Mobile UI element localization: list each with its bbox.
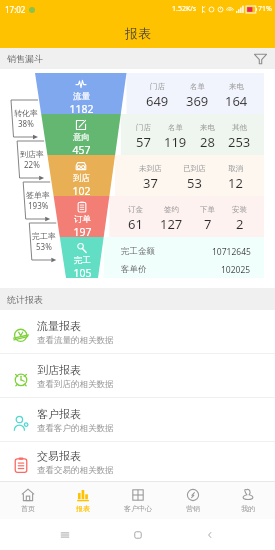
staticText: 164 [225, 92, 248, 110]
staticText: 销售漏斗 [7, 53, 43, 64]
staticText: 订金 [128, 205, 143, 214]
staticText: 签单率 [26, 190, 50, 200]
button[interactable]: Menu [58, 528, 72, 542]
staticText: 253 [228, 133, 251, 151]
staticText: 统计报表 [7, 294, 43, 305]
staticText: 下单 [200, 205, 215, 214]
staticText: 报表 [76, 504, 90, 513]
staticText: 457 [72, 143, 91, 157]
button[interactable]: 客户中心 [110, 481, 165, 519]
staticText: 名单 [168, 123, 183, 132]
staticText: 53% [36, 241, 52, 252]
staticText: 10712645 [212, 246, 251, 258]
staticText: 客户中心 [124, 504, 152, 513]
staticText: 193% [28, 200, 49, 211]
button[interactable]: Back [203, 528, 217, 542]
staticText: 查看到店的相关数据 [37, 379, 114, 390]
button[interactable]: 客户报表 [0, 398, 275, 442]
staticText: 查看交易的相关数据 [37, 465, 114, 476]
staticText: 102025 [221, 264, 251, 276]
staticText: 查看客户的相关数据 [37, 423, 114, 434]
button[interactable]: 流量报表 [0, 310, 275, 354]
staticText: 61 [128, 215, 143, 233]
staticText: 到店率 [20, 149, 44, 159]
staticText: 7 [204, 215, 212, 233]
staticText: 门店 [136, 123, 151, 132]
staticText: 其他 [232, 123, 247, 132]
staticText: 签约 [164, 205, 179, 214]
staticText: 28 [200, 133, 215, 151]
staticText: 我的 [241, 504, 255, 513]
staticText: 53 [187, 174, 202, 192]
staticText: 1182 [69, 102, 94, 116]
staticText: 102 [72, 184, 91, 198]
staticText: 369 [186, 92, 209, 110]
button[interactable]: 首页 [0, 481, 55, 519]
staticText: 来电 [229, 82, 244, 91]
staticText: 客户报表 [37, 407, 81, 421]
staticText: 首页 [21, 504, 35, 513]
staticText: 客单价 [121, 264, 147, 275]
staticText: 营销 [186, 504, 200, 513]
staticText: 到店 [73, 173, 90, 184]
staticText: 22% [24, 159, 40, 170]
button[interactable]: 到店报表 [0, 354, 275, 398]
staticText: 流量报表 [37, 319, 81, 333]
button[interactable]: 报表 [55, 481, 110, 519]
staticText: 12 [228, 174, 243, 192]
staticText: 到店报表 [37, 363, 81, 377]
staticText: 名单 [190, 82, 205, 91]
staticText: 2 [236, 215, 244, 233]
staticText: 订单 [74, 214, 91, 225]
staticText: 119 [164, 133, 187, 151]
staticText: 交易报表 [37, 449, 81, 463]
staticText: 意向 [73, 132, 90, 143]
button[interactable]: 筛选 [253, 51, 268, 66]
staticText: 完工率 [32, 231, 56, 241]
staticText: 报表 [125, 25, 151, 41]
staticText: 38% [18, 118, 34, 129]
staticText: 门店 [150, 82, 165, 91]
staticText: 17:02 [5, 4, 26, 15]
staticText: 来电 [200, 123, 215, 132]
staticText: 完工 [74, 255, 91, 266]
staticText: 未到店 [139, 164, 162, 173]
staticText: 取消 [228, 164, 243, 173]
staticText: 1.52K/s [172, 4, 197, 14]
button[interactable]: 营销 [165, 481, 220, 519]
staticText: 37 [143, 174, 158, 192]
button[interactable]: 交易报表 [0, 442, 275, 481]
staticText: 已到店 [183, 164, 206, 173]
staticText: 127 [160, 215, 183, 233]
staticText: 71% [258, 4, 272, 14]
staticText: 查看流量的相关数据 [37, 335, 114, 346]
staticText: 流量 [73, 91, 90, 102]
button[interactable]: Home [131, 528, 145, 542]
staticText: 105 [73, 266, 92, 280]
staticText: 57 [136, 133, 151, 151]
staticText: 197 [73, 225, 92, 239]
staticText: 安装 [232, 205, 247, 214]
staticText: 完工金额 [121, 246, 155, 257]
button[interactable]: 我的 [220, 481, 275, 519]
staticText: 649 [146, 92, 169, 110]
staticText: 转化率 [14, 108, 38, 118]
